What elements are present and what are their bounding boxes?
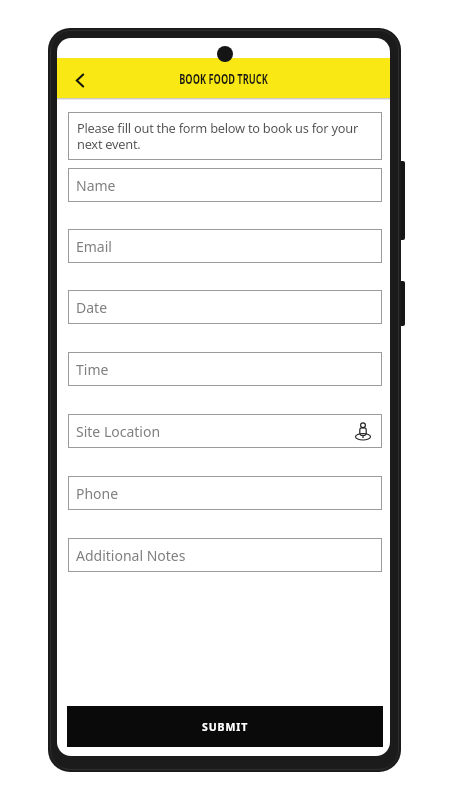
button[interactable]: Additional Notes (68, 538, 382, 572)
staticText: Time (76, 360, 109, 379)
button[interactable]: Time (68, 352, 382, 386)
staticText: Additional Notes (76, 546, 186, 565)
button[interactable] (76, 74, 84, 87)
staticText: Email (76, 237, 112, 256)
button[interactable]: Site Location (68, 414, 382, 448)
button[interactable]: Date (68, 290, 382, 324)
staticText: Name (76, 176, 116, 195)
staticText: Site Location (76, 422, 161, 441)
button[interactable]: SUBMIT (67, 706, 383, 747)
staticText: BOOK FOOD TRUCK (179, 69, 268, 88)
staticText: SUBMIT (202, 720, 249, 734)
button[interactable]: Phone (68, 476, 382, 510)
staticText: Please fill out the form below to book u… (77, 119, 358, 153)
button[interactable]: Email (68, 229, 382, 263)
staticText: Phone (76, 484, 119, 503)
button[interactable]: Name (68, 168, 382, 202)
staticText: Date (76, 298, 108, 317)
